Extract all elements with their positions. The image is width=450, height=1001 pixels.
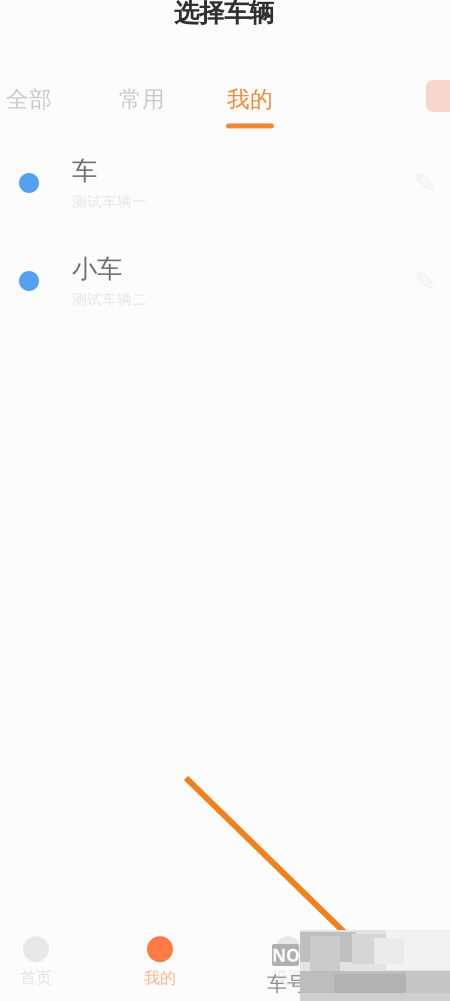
button[interactable]: 全部 (0, 82, 75, 132)
staticText: 我的 (144, 968, 176, 988)
button[interactable]: Add vehicle (426, 80, 450, 112)
staticText: 车 (72, 155, 97, 186)
staticText: NO. (272, 943, 304, 966)
button[interactable]: 首页 (0, 931, 99, 993)
button[interactable]: 小车 (0, 232, 450, 330)
staticText: 我的 (227, 86, 273, 113)
button[interactable]: 我的 (97, 931, 223, 993)
staticText: 选择车辆 (174, 0, 274, 28)
button[interactable]: 常用 (96, 82, 188, 132)
staticText: ✎ (414, 266, 436, 296)
button[interactable]: 车 (0, 134, 450, 232)
staticText: 设置 (272, 968, 304, 988)
staticText: 常用 (119, 86, 165, 113)
staticText: 全部 (6, 86, 52, 113)
staticText: 测试车辆一 (72, 193, 147, 211)
staticText: ✎ (414, 168, 436, 198)
staticText: 测试车辆二 (72, 291, 147, 309)
staticText: 车号 (267, 972, 307, 996)
staticText: 首页 (20, 968, 52, 988)
button[interactable]: 我的 (204, 82, 296, 132)
button[interactable]: 设置 (225, 931, 351, 993)
staticText: 小车 (72, 253, 122, 284)
